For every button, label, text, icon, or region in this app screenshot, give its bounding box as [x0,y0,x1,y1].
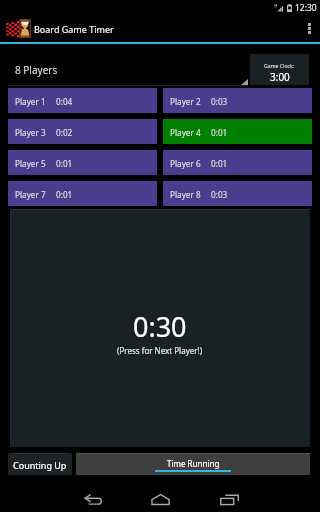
button[interactable]: More options [298,15,320,42]
staticText: Player 4 [170,127,201,138]
staticText: Player 5 [15,158,46,169]
staticText: 0:01 [56,158,73,169]
staticText: 0:01 [56,189,73,200]
staticText: 0:03 [211,189,228,200]
staticText: Board Game Timer [34,23,114,35]
button[interactable]: Back [69,479,115,512]
staticText: 12:30 [295,2,317,14]
button[interactable]: Player 3 [8,119,157,144]
staticText: Counting Up [13,459,67,471]
button[interactable]: Player 8 [163,181,312,206]
button[interactable]: Player 1 [8,88,157,113]
staticText: Game Clock: [264,62,295,69]
staticText: 0:01 [211,158,228,169]
button[interactable]: Player 7 [8,181,157,206]
staticText: 0:04 [56,96,73,107]
button[interactable]: 8 Players [8,63,248,86]
staticText: Player 3 [15,127,46,138]
staticText: 0:02 [56,127,73,138]
staticText: Player 7 [15,189,46,200]
staticText: 0:30 [133,308,187,345]
button[interactable]: Player 6 [163,150,312,175]
staticText: (Press for Next Player!) [117,345,203,356]
button[interactable]: 0:30 [10,209,310,447]
staticText: 3:00 [270,70,290,84]
staticText: Player 8 [170,189,201,200]
staticText: Time Running [167,458,220,469]
button[interactable]: Home [137,479,183,512]
button[interactable]: Player 4 [163,119,312,144]
button[interactable]: Time Running [76,453,310,475]
button[interactable]: Player 2 [163,88,312,113]
staticText: 0:01 [211,127,228,138]
staticText: Player 6 [170,158,201,169]
button[interactable]: Player 5 [8,150,157,175]
staticText: 0:03 [211,96,228,107]
button[interactable]: Counting Up [8,453,72,475]
button[interactable]: Recent apps [206,479,252,512]
staticText: Player 1 [15,96,46,107]
button[interactable]: Game Clock: [250,54,309,85]
staticText: Player 2 [170,96,201,107]
staticText: 8 Players [15,63,58,77]
